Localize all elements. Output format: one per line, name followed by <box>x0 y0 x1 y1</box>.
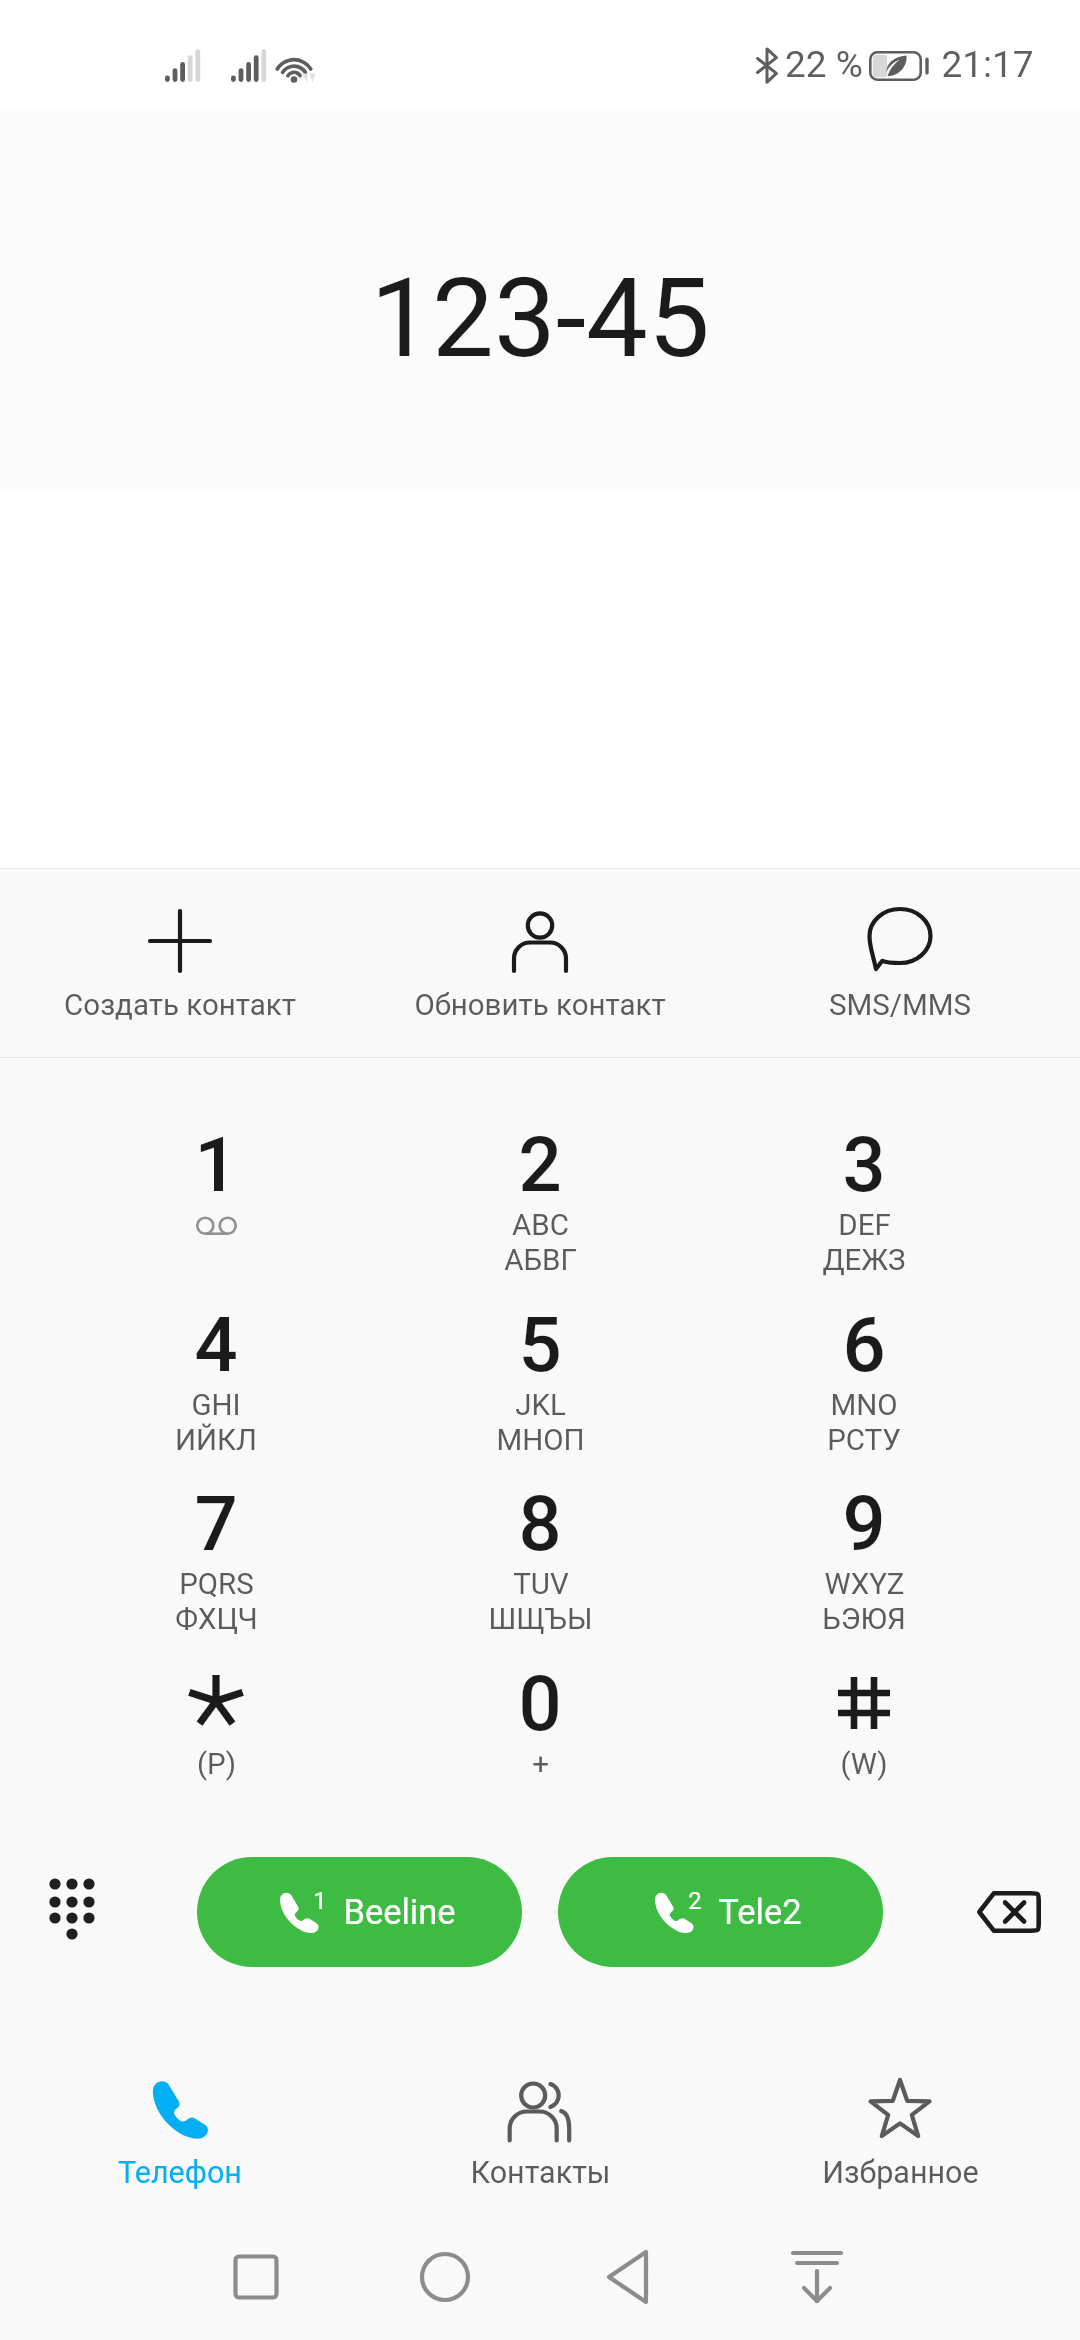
staticText: (P) <box>197 1747 236 1782</box>
staticText: DEF <box>838 1208 891 1243</box>
staticText: Телефон <box>118 2155 242 2191</box>
staticText: ABC <box>512 1208 569 1243</box>
staticText: WXYZ <box>824 1567 905 1602</box>
button[interactable]: Создать контакт <box>0 869 360 1057</box>
staticText: 6 <box>842 1300 886 1389</box>
staticText: АБВГ <box>504 1243 577 1278</box>
button[interactable]: Back <box>571 2209 691 2339</box>
staticText: 8 <box>518 1479 562 1568</box>
staticText: ИЙКЛ <box>175 1423 257 1458</box>
staticText: MNO <box>830 1388 898 1423</box>
staticText: 7 <box>194 1479 238 1568</box>
staticText: (W) <box>840 1747 888 1782</box>
staticText: 1 <box>194 1120 238 1209</box>
button[interactable]: Контакты <box>360 2059 720 2209</box>
staticText: 5 <box>518 1300 562 1389</box>
staticText: Контакты <box>470 2155 611 2191</box>
staticText: Tele2 <box>718 1892 802 1932</box>
button[interactable]: 1 <box>197 1857 522 1967</box>
button[interactable]: Recents <box>196 2209 316 2339</box>
staticText: 21:17 <box>941 43 1034 86</box>
button[interactable]: (W) <box>702 1602 1026 1778</box>
staticText: 123-45 <box>370 254 710 383</box>
button[interactable]: 9 <box>702 1422 1026 1598</box>
button[interactable]: Home <box>385 2209 505 2339</box>
staticText: МНОП <box>496 1423 585 1458</box>
button[interactable]: 4 <box>54 1243 378 1419</box>
staticText: Обновить контакт <box>414 988 666 1023</box>
staticText: 4 <box>194 1300 238 1389</box>
staticText: 3 <box>842 1120 886 1209</box>
button[interactable]: Hide keyboard <box>757 2209 877 2339</box>
button[interactable]: 2 <box>378 1063 702 1239</box>
staticText: JKL <box>515 1388 566 1423</box>
button[interactable]: 6 <box>702 1243 1026 1419</box>
staticText: 2 <box>518 1120 562 1209</box>
staticText: 2 <box>688 1887 702 1915</box>
staticText: ЬЭЮЯ <box>822 1602 906 1637</box>
staticText: + <box>532 1747 549 1782</box>
button[interactable]: 8 <box>378 1422 702 1598</box>
staticText: PQRS <box>179 1567 254 1602</box>
staticText: ФХЦЧ <box>175 1602 258 1637</box>
button[interactable]: 0 <box>378 1602 702 1778</box>
staticText: РСТУ <box>827 1423 901 1458</box>
staticText: 0 <box>518 1659 562 1748</box>
button[interactable]: Backspace <box>936 1857 1080 1967</box>
staticText: 9 <box>842 1479 886 1568</box>
button[interactable]: 3 <box>702 1063 1026 1239</box>
button[interactable]: SMS/MMS <box>720 869 1080 1057</box>
button[interactable]: 1 <box>54 1063 378 1239</box>
button[interactable]: Телефон <box>0 2059 360 2209</box>
staticText: TUV <box>513 1567 569 1602</box>
staticText: Создать контакт <box>64 988 296 1023</box>
button[interactable]: 7 <box>54 1422 378 1598</box>
staticText: Избранное <box>822 2155 979 2191</box>
button[interactable]: 2 <box>558 1857 883 1967</box>
staticText: ДЕЖЗ <box>822 1243 906 1278</box>
button[interactable]: Избранное <box>720 2059 1080 2209</box>
staticText: Beeline <box>343 1892 456 1932</box>
staticText: ШЩЪЫ <box>488 1602 593 1637</box>
staticText: 22 % <box>785 43 863 86</box>
button[interactable]: Обновить контакт <box>360 869 720 1057</box>
staticText: GHI <box>191 1388 241 1423</box>
button[interactable]: 5 <box>378 1243 702 1419</box>
button[interactable]: Show dialpad <box>0 1857 144 1967</box>
staticText: SMS/MMS <box>829 988 971 1023</box>
staticText: 1 <box>313 1887 327 1915</box>
button[interactable]: (P) <box>54 1602 378 1778</box>
